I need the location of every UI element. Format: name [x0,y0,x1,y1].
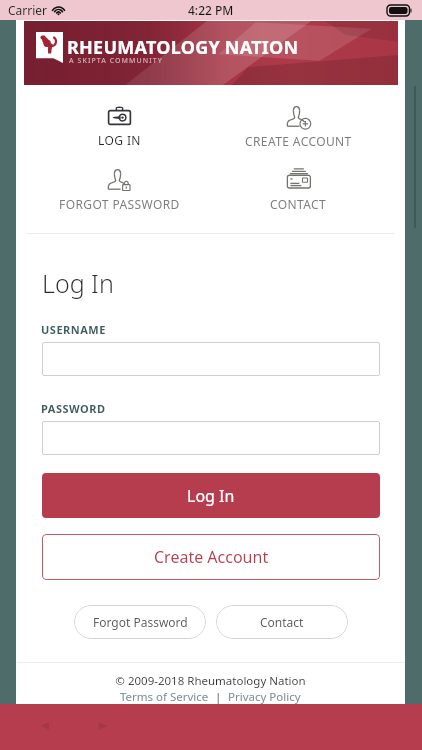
button[interactable]: Forgot Password [74,605,206,639]
button[interactable]: Forward [90,713,116,739]
staticText: 4:22 PM [188,2,234,18]
staticText: RHEUMATOLOGY NATION [67,35,299,60]
staticText: LOG IN [98,132,141,148]
button[interactable]: CONTACT [218,159,378,211]
staticText: CREATE ACCOUNT [245,133,352,148]
button[interactable]: Log In [42,473,380,518]
button[interactable]: Back [32,713,58,739]
staticText: Contact [260,614,304,630]
staticText: USERNAME [41,322,106,337]
staticText: Log In [187,485,235,507]
staticText: Forgot Password [93,614,188,630]
button[interactable]: Contact [216,605,348,639]
button[interactable]: CREATE ACCOUNT [218,96,378,148]
button[interactable]: LOG IN [39,97,199,149]
staticText: PASSWORD [41,401,106,416]
button[interactable] [42,342,380,376]
button[interactable]: Privacy Policy [228,689,301,705]
staticText: | [209,689,228,705]
staticText: CONTACT [270,196,327,211]
staticText: Log In [42,266,114,300]
staticText: Carrier [8,2,48,18]
button[interactable]: Terms of Service [120,689,209,705]
button[interactable]: FORGOT PASSWORD [39,159,199,211]
staticText: © 2009-2018 Rheumatology Nation [115,673,306,689]
button[interactable]: Create Account [42,534,380,580]
button[interactable] [42,421,380,455]
staticText: A SKIPTA COMMUNITY [69,56,163,66]
staticText: Create Account [154,546,269,568]
button[interactable]: Rheumatology Nation [24,21,398,85]
staticText: FORGOT PASSWORD [59,196,180,211]
